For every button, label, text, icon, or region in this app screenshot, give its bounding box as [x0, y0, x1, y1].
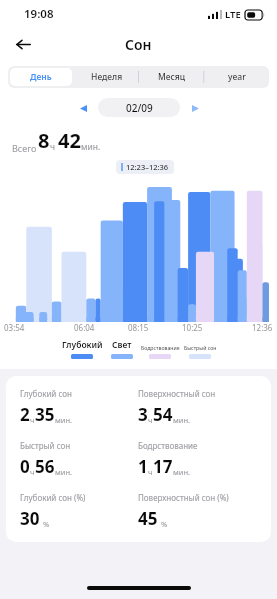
button[interactable]: year — [206, 68, 267, 86]
staticText: 30 — [20, 507, 40, 530]
staticText: Глубокий сон (%) — [20, 492, 86, 503]
staticText: мин. — [173, 467, 191, 477]
staticText: Бодрствование — [138, 440, 198, 451]
staticText: % — [161, 519, 168, 529]
staticText: 42 — [58, 127, 81, 154]
staticText: Сон — [125, 35, 152, 54]
staticText: Быстрый сон — [20, 440, 71, 451]
staticText: ч — [50, 141, 56, 153]
staticText: 06:04 — [74, 322, 95, 333]
staticText: 10:25 — [182, 322, 203, 333]
staticText: Всего — [12, 142, 37, 154]
button[interactable]: Previous day — [74, 99, 92, 117]
staticText: 54 — [153, 403, 173, 426]
button[interactable]: День — [10, 68, 72, 86]
staticText: мин. — [55, 467, 73, 477]
staticText: Глубокий — [62, 339, 103, 351]
button[interactable]: Back — [8, 29, 38, 59]
staticText: Бодрствование — [141, 344, 180, 351]
staticText: 35 — [35, 403, 55, 426]
staticText: ч — [30, 467, 35, 477]
staticText: 12:23–12:36 — [126, 162, 169, 172]
staticText: 19:08 — [24, 6, 54, 22]
staticText: ч — [148, 415, 153, 425]
staticText: мин. — [55, 415, 73, 425]
staticText: year — [228, 71, 246, 83]
staticText: День — [30, 71, 52, 83]
staticText: Свет — [112, 339, 132, 351]
staticText: 0 — [20, 455, 30, 478]
staticText: 12:36 — [252, 322, 273, 333]
staticText: LTE — [225, 8, 241, 21]
button[interactable]: Месяц — [141, 68, 202, 86]
staticText: мин. — [81, 141, 101, 153]
staticText: ч — [148, 467, 153, 477]
staticText: 03:54 — [4, 322, 25, 333]
staticText: Быстрый сон — [184, 344, 217, 351]
staticText: Поверхностный сон — [138, 388, 216, 399]
staticText: 02/09 — [126, 101, 153, 115]
staticText: 3 — [138, 403, 148, 426]
staticText: 17 — [153, 455, 173, 478]
staticText: 56 — [35, 455, 55, 478]
button[interactable]: Next day — [186, 99, 204, 117]
staticText: % — [43, 519, 50, 529]
staticText: ч — [30, 415, 35, 425]
staticText: Неделя — [91, 71, 123, 83]
staticText: Месяц — [158, 71, 186, 83]
staticText: Глубокий сон — [20, 388, 72, 399]
staticText: Поверхностный сон (%) — [138, 492, 229, 503]
staticText: 1 — [138, 455, 148, 478]
staticText: 2 — [20, 403, 30, 426]
staticText: 08:15 — [128, 322, 149, 333]
staticText: 8 — [38, 127, 50, 154]
staticText: мин. — [173, 415, 191, 425]
button[interactable]: 02/09 — [98, 98, 180, 117]
button[interactable]: Неделя — [76, 68, 137, 86]
staticText: 45 — [138, 507, 158, 530]
